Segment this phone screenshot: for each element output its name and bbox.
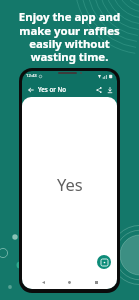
staticText: Enjoy the app and make your raffles easi… bbox=[0, 9, 139, 64]
staticText: 12:43 bbox=[26, 73, 37, 79]
button[interactable]: Share bbox=[93, 84, 104, 95]
button[interactable]: Download bbox=[104, 84, 115, 95]
staticText: Yes bbox=[57, 173, 83, 195]
button[interactable]: Draw again bbox=[97, 255, 111, 269]
button[interactable]: Recent apps bbox=[91, 277, 102, 288]
button[interactable]: Home bbox=[64, 277, 75, 288]
button[interactable]: Back bbox=[38, 277, 49, 288]
button[interactable]: Back bbox=[25, 84, 36, 95]
staticText: Yes or No bbox=[38, 85, 67, 93]
